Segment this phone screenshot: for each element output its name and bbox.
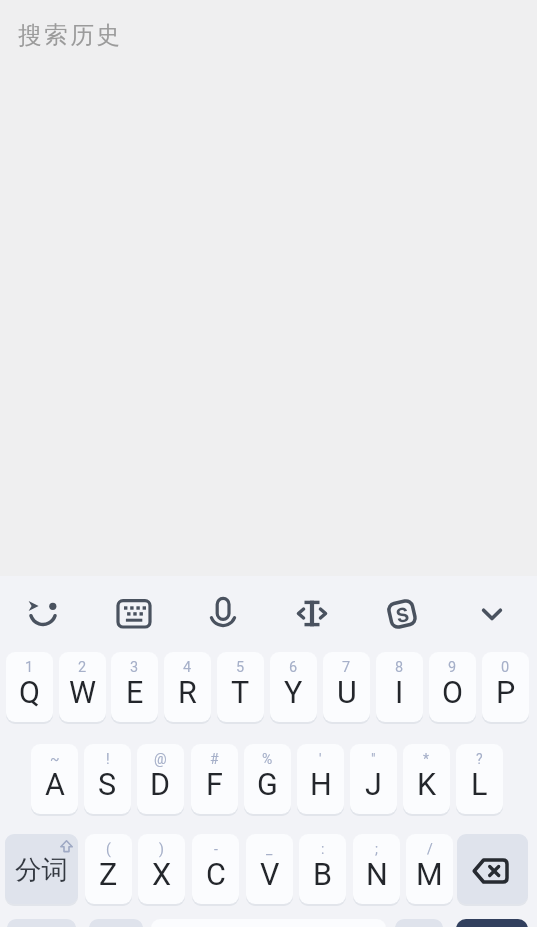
staticText: 7	[342, 659, 351, 676]
staticText: H	[310, 767, 332, 803]
staticText: -	[214, 841, 218, 857]
staticText: ?	[476, 751, 483, 767]
staticText: W	[69, 675, 97, 711]
staticText: D	[150, 767, 171, 803]
staticText: X	[152, 857, 172, 893]
button[interactable]: S	[357, 576, 447, 652]
button[interactable]: 0	[482, 652, 529, 722]
staticText: L	[471, 767, 488, 803]
button[interactable]	[447, 576, 537, 652]
button[interactable]: -	[192, 834, 239, 904]
staticText: 4	[183, 659, 192, 676]
staticText: %	[262, 751, 273, 767]
staticText: E	[126, 675, 144, 711]
button[interactable]: 1	[6, 652, 53, 722]
button[interactable]	[457, 834, 528, 904]
staticText: 0	[501, 659, 510, 676]
staticText: @	[154, 751, 167, 767]
staticText: ;	[375, 841, 378, 857]
staticText: 分词	[15, 853, 68, 886]
staticText: :	[321, 841, 325, 857]
staticText: '	[319, 751, 322, 767]
staticText: P	[496, 675, 516, 711]
button[interactable]: 2	[59, 652, 106, 722]
staticText: O	[442, 675, 463, 711]
staticText: C	[206, 857, 226, 893]
button[interactable]: *	[403, 744, 450, 814]
button[interactable]: ;	[353, 834, 400, 904]
staticText: 2	[78, 659, 87, 676]
button[interactable]: ~	[31, 744, 78, 814]
staticText: K	[417, 767, 437, 803]
button[interactable]: 3	[111, 652, 158, 722]
button[interactable]: (	[85, 834, 132, 904]
staticText: !	[106, 751, 110, 767]
button[interactable]	[456, 919, 528, 927]
button[interactable]	[7, 919, 76, 927]
staticText: 5	[236, 659, 245, 676]
button[interactable]: "	[350, 744, 397, 814]
button[interactable]: !	[84, 744, 131, 814]
button[interactable]	[89, 919, 143, 927]
staticText: V	[260, 857, 280, 893]
staticText: A	[45, 767, 65, 803]
button[interactable]: %	[244, 744, 291, 814]
button[interactable]: 5	[217, 652, 264, 722]
staticText: N	[366, 857, 388, 893]
staticText: (	[106, 841, 111, 857]
staticText: )	[159, 841, 164, 857]
button[interactable]	[178, 576, 267, 652]
button[interactable]: 7	[323, 652, 370, 722]
button[interactable]: 8	[376, 652, 423, 722]
staticText: ~	[50, 751, 60, 767]
staticText: Y	[284, 675, 303, 711]
staticText: 6	[289, 659, 298, 676]
staticText: Z	[99, 857, 118, 893]
button[interactable]: '	[297, 744, 344, 814]
staticText: Q	[19, 675, 40, 711]
button[interactable]: 4	[164, 652, 211, 722]
button[interactable]	[267, 576, 357, 652]
staticText: J	[365, 767, 382, 803]
staticText: T	[231, 675, 250, 711]
staticText: R	[178, 675, 197, 711]
button[interactable]: /	[406, 834, 453, 904]
staticText: S	[98, 767, 117, 803]
staticText: 1	[25, 659, 34, 676]
staticText: *	[423, 751, 430, 767]
staticText: "	[371, 751, 376, 767]
button[interactable]: 分词	[5, 834, 78, 904]
staticText: 搜索历史	[17, 20, 121, 50]
button[interactable]	[395, 919, 443, 927]
staticText: 8	[395, 659, 404, 676]
staticText: I	[395, 675, 404, 711]
button[interactable]	[0, 576, 89, 652]
button[interactable]: @	[137, 744, 184, 814]
button[interactable]: #	[191, 744, 238, 814]
button[interactable]: 9	[429, 652, 476, 722]
button[interactable]: _	[246, 834, 293, 904]
staticText: M	[416, 857, 443, 893]
staticText: 9	[448, 659, 457, 676]
staticText: S	[394, 602, 411, 627]
staticText: B	[313, 857, 333, 893]
button[interactable]: 6	[270, 652, 317, 722]
staticText: 3	[130, 659, 139, 676]
staticText: _	[266, 841, 273, 857]
staticText: G	[257, 767, 278, 803]
button[interactable]: ?	[456, 744, 503, 814]
staticText: /	[427, 841, 433, 857]
button[interactable]	[89, 576, 178, 652]
button[interactable]: :	[299, 834, 346, 904]
staticText: F	[206, 767, 223, 803]
staticText: U	[337, 675, 357, 711]
staticText: #	[210, 751, 219, 767]
button[interactable]: )	[138, 834, 185, 904]
